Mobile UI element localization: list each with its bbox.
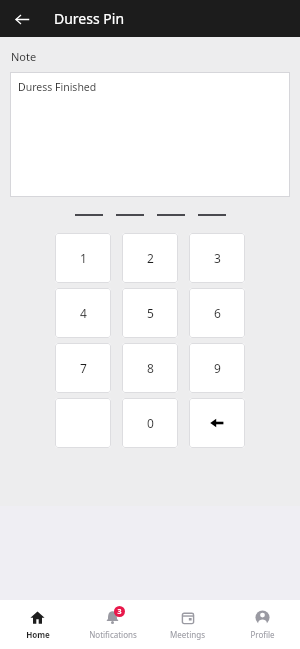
- staticText: 8: [147, 360, 154, 376]
- staticText: 1: [80, 250, 87, 266]
- button[interactable]: Duress Finished: [10, 72, 290, 197]
- button[interactable]: 6: [189, 288, 245, 338]
- button[interactable]: Profile: [225, 600, 300, 649]
- staticText: Profile: [250, 629, 275, 640]
- staticText: 3: [214, 250, 221, 266]
- button[interactable]: 9: [189, 343, 245, 393]
- button[interactable]: 5: [122, 288, 178, 338]
- staticText: 3: [117, 607, 122, 617]
- staticText: Note: [11, 49, 37, 64]
- button[interactable]: 7: [55, 343, 111, 393]
- button[interactable]: 1: [55, 233, 111, 283]
- staticText: 7: [80, 360, 87, 376]
- staticText: Meetings: [170, 629, 205, 640]
- staticText: 2: [147, 250, 154, 266]
- staticText: 0: [147, 415, 154, 431]
- button[interactable]: Meetings: [150, 600, 225, 649]
- staticText: 6: [214, 305, 221, 321]
- button[interactable]: 3: [75, 600, 150, 649]
- button[interactable]: 2: [122, 233, 178, 283]
- button[interactable]: 4: [55, 288, 111, 338]
- staticText: Duress Pin: [54, 9, 125, 28]
- button[interactable]: 3: [189, 233, 245, 283]
- staticText: Notifications: [89, 629, 137, 640]
- staticText: Duress Finished: [18, 80, 97, 94]
- button[interactable]: Home: [0, 600, 75, 649]
- button[interactable]: Blank: [55, 398, 111, 448]
- button[interactable]: 8: [122, 343, 178, 393]
- button[interactable]: Back: [9, 6, 35, 32]
- staticText: Home: [26, 629, 50, 640]
- button[interactable]: 0: [122, 398, 178, 448]
- staticText: 4: [80, 305, 87, 321]
- button[interactable]: Backspace: [189, 398, 245, 448]
- staticText: 5: [147, 305, 154, 321]
- staticText: 9: [214, 360, 221, 376]
